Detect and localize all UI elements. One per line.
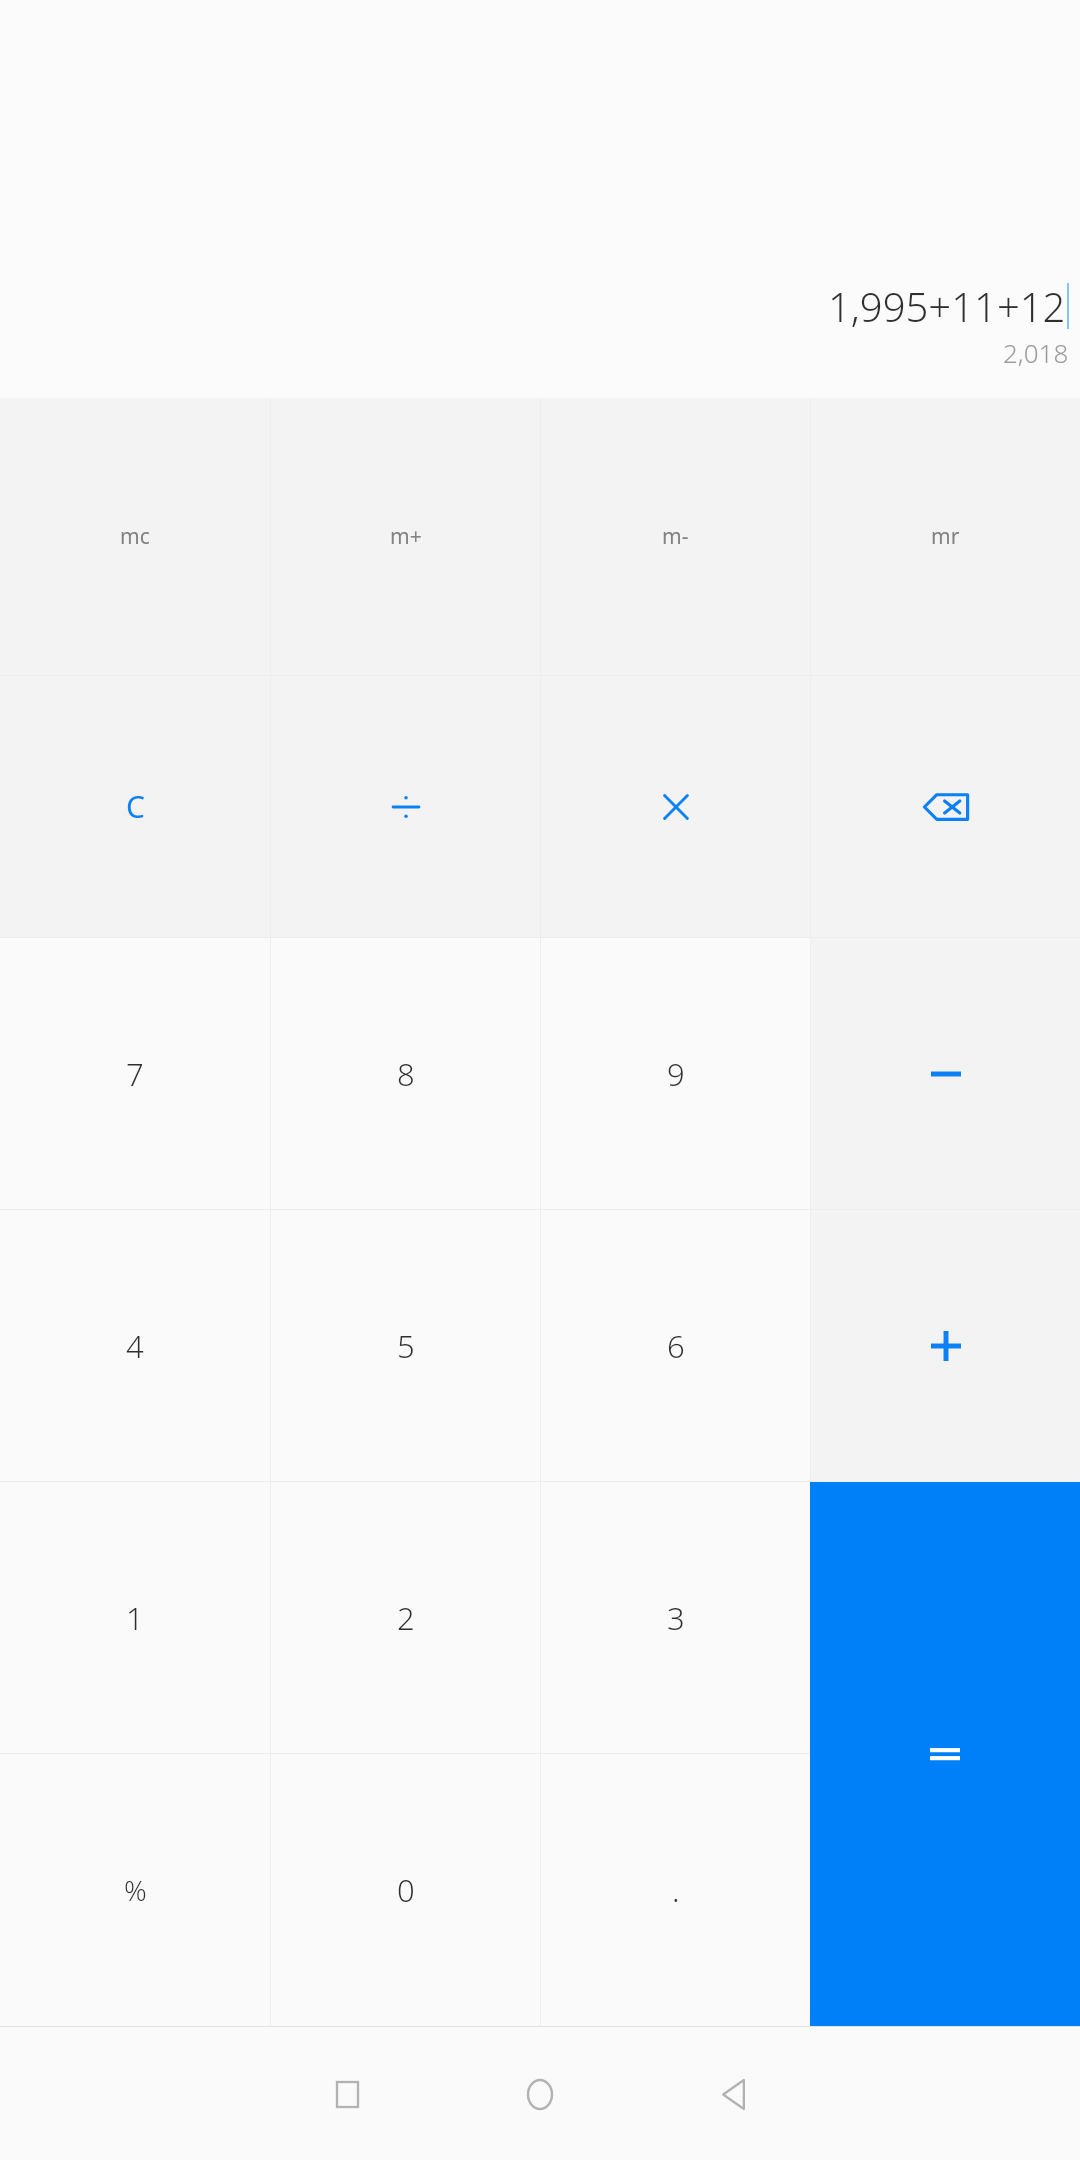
- button[interactable]: m-: [541, 398, 810, 675]
- button[interactable]: Home: [508, 2062, 572, 2126]
- staticText: 6: [667, 1325, 685, 1367]
- staticText: %: [124, 1871, 147, 1909]
- button[interactable]: 6: [541, 1210, 810, 1481]
- button[interactable]: 3: [541, 1482, 810, 1753]
- staticText: .: [672, 1869, 680, 1911]
- staticText: mr: [931, 522, 960, 551]
- button[interactable]: C: [0, 676, 270, 937]
- staticText: 9: [667, 1053, 685, 1095]
- staticText: m+: [390, 522, 422, 551]
- button[interactable]: Minus: [811, 938, 1080, 1209]
- button[interactable]: Backspace: [811, 676, 1080, 937]
- staticText: 1: [126, 1597, 144, 1639]
- button[interactable]: Back: [701, 2062, 765, 2126]
- button[interactable]: 1: [0, 1482, 270, 1753]
- staticText: 5: [397, 1325, 415, 1367]
- button[interactable]: 7: [0, 938, 270, 1209]
- button[interactable]: 4: [0, 1210, 270, 1481]
- staticText: 2: [397, 1597, 415, 1639]
- button[interactable]: Multiply: [541, 676, 810, 937]
- staticText: mc: [120, 522, 150, 551]
- staticText: 2,018: [1003, 335, 1069, 370]
- button[interactable]: 9: [541, 938, 810, 1209]
- button[interactable]: Overview: [315, 2062, 379, 2126]
- staticText: 8: [397, 1053, 415, 1095]
- button[interactable]: Equals: [810, 1482, 1080, 2026]
- staticText: C: [126, 786, 145, 827]
- button[interactable]: mc: [0, 398, 270, 675]
- button[interactable]: 0: [271, 1754, 540, 2026]
- staticText: 1,995+11+12: [828, 279, 1066, 333]
- button[interactable]: 2: [271, 1482, 540, 1753]
- staticText: m-: [662, 522, 689, 551]
- button[interactable]: Plus: [811, 1210, 1080, 1481]
- button[interactable]: 5: [271, 1210, 540, 1481]
- button[interactable]: Divide: [271, 676, 540, 937]
- button[interactable]: mr: [811, 398, 1080, 675]
- staticText: 7: [126, 1053, 144, 1095]
- staticText: 3: [667, 1597, 685, 1639]
- staticText: 0: [397, 1869, 415, 1911]
- staticText: 4: [126, 1325, 144, 1367]
- button[interactable]: 8: [271, 938, 540, 1209]
- button[interactable]: m+: [271, 398, 540, 675]
- button[interactable]: %: [0, 1754, 270, 2026]
